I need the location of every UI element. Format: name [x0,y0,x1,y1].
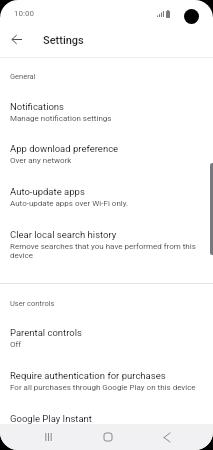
staticText: Require authentication for purchases [10,370,166,381]
staticText: Manage notification settings [10,114,112,123]
staticText: User controls [10,299,55,308]
button[interactable]: Parental controls [0,317,213,360]
button[interactable]: Google Play Instant [0,403,213,446]
staticText: Settings [43,34,84,47]
button[interactable]: Clear local search history [0,219,213,271]
button[interactable]: Require authentication for purchases [0,360,213,403]
staticText: Upgrade web links [10,426,76,435]
staticText: Remove searches that you have performed … [10,242,203,260]
staticText: For all purchases through Google Play on… [10,383,196,392]
staticText: Parental controls [10,327,82,338]
button[interactable]: App download preference [0,133,213,176]
button[interactable]: Auto-update apps [0,176,213,219]
staticText: App download preference [10,143,119,154]
staticText: Google Play Instant [10,413,92,424]
button[interactable]: Recent apps [34,424,62,450]
staticText: Notifications [10,101,65,112]
button[interactable]: Back [153,424,181,450]
staticText: Over any network [10,156,72,165]
staticText: Auto-update apps over Wi-Fi only. [10,199,129,208]
staticText: Auto-update apps [10,186,85,197]
button[interactable]: Navigate up [5,28,28,51]
staticText: General [10,72,36,81]
button[interactable]: Notifications [0,91,213,134]
staticText: Off [10,340,22,349]
staticText: 10:00 [14,9,34,18]
button[interactable]: Home [94,424,122,450]
staticText: Clear local search history [10,229,117,240]
